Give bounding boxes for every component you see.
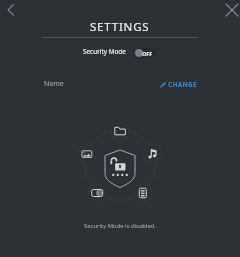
staticText: SETTINGS	[90, 19, 150, 35]
button[interactable]: Close	[221, 0, 240, 21]
staticText: Name	[44, 79, 64, 89]
staticText: CHANGE	[168, 80, 197, 89]
button[interactable]: Back	[0, 0, 20, 20]
button[interactable]: CHANGE	[160, 80, 197, 89]
button[interactable]: OFF	[133, 48, 156, 58]
staticText: OFF	[142, 50, 153, 57]
staticText: Security Mode	[83, 47, 126, 56]
staticText: Security Mode is disabled.	[84, 222, 156, 230]
